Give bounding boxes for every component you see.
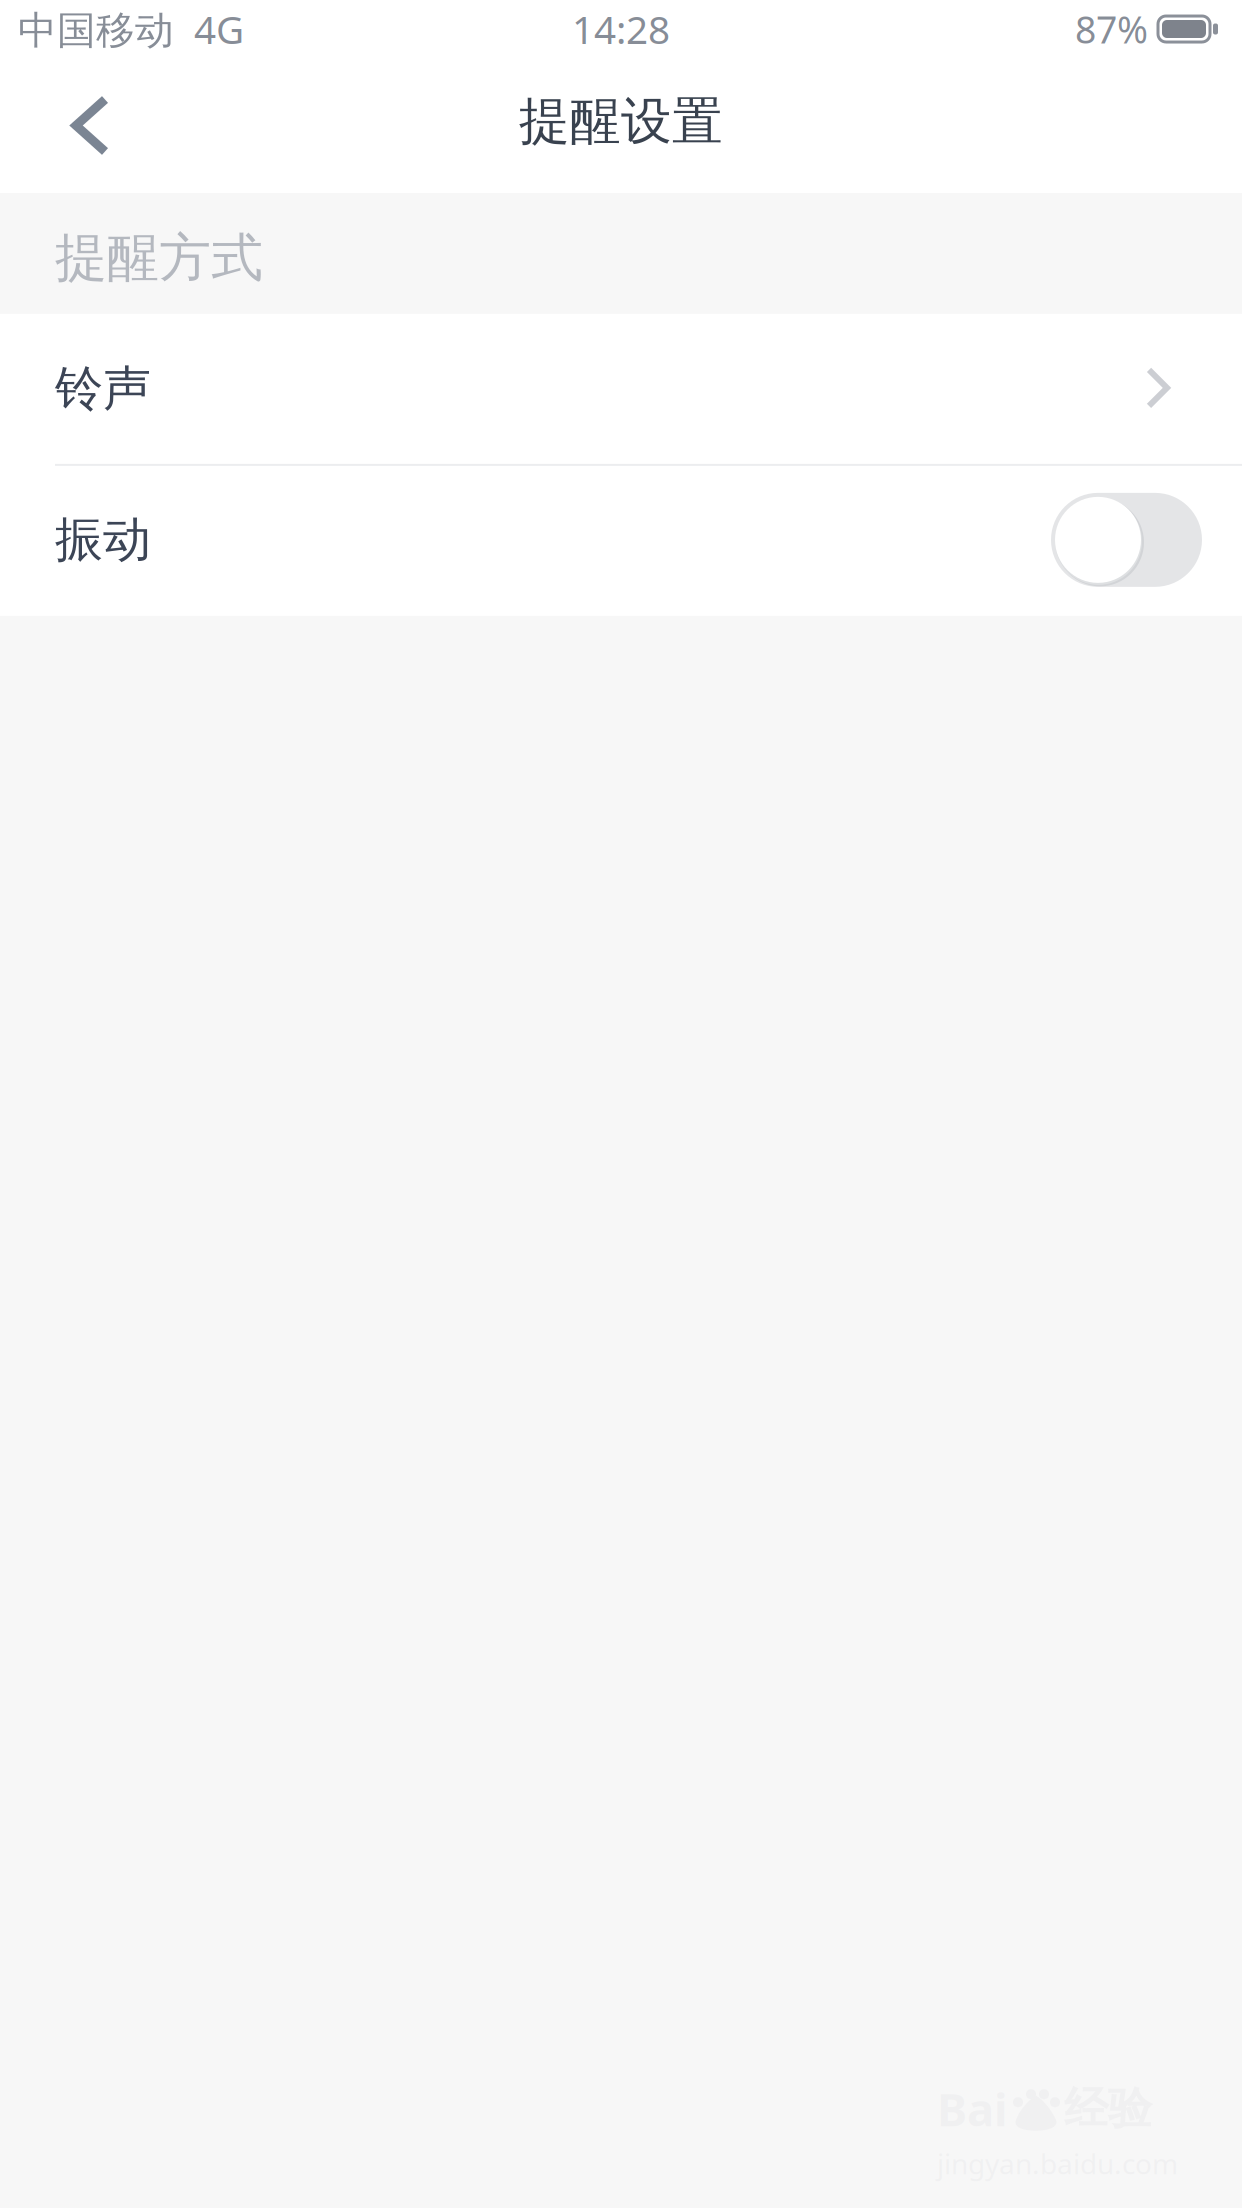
- button[interactable]: 振动: [1051, 493, 1202, 587]
- staticText: 经验: [1064, 2082, 1152, 2136]
- staticText: 提醒方式: [55, 226, 263, 290]
- staticText: 87%: [1075, 4, 1148, 54]
- staticText: 铃声: [55, 359, 151, 418]
- button[interactable]: 返回: [0, 58, 151, 193]
- button[interactable]: 铃声: [0, 314, 1242, 464]
- staticText: 振动: [55, 510, 151, 569]
- staticText: 14:28: [572, 3, 670, 55]
- staticText: 提醒设置: [519, 90, 723, 153]
- staticText: 中国移动 4G: [18, 3, 244, 55]
